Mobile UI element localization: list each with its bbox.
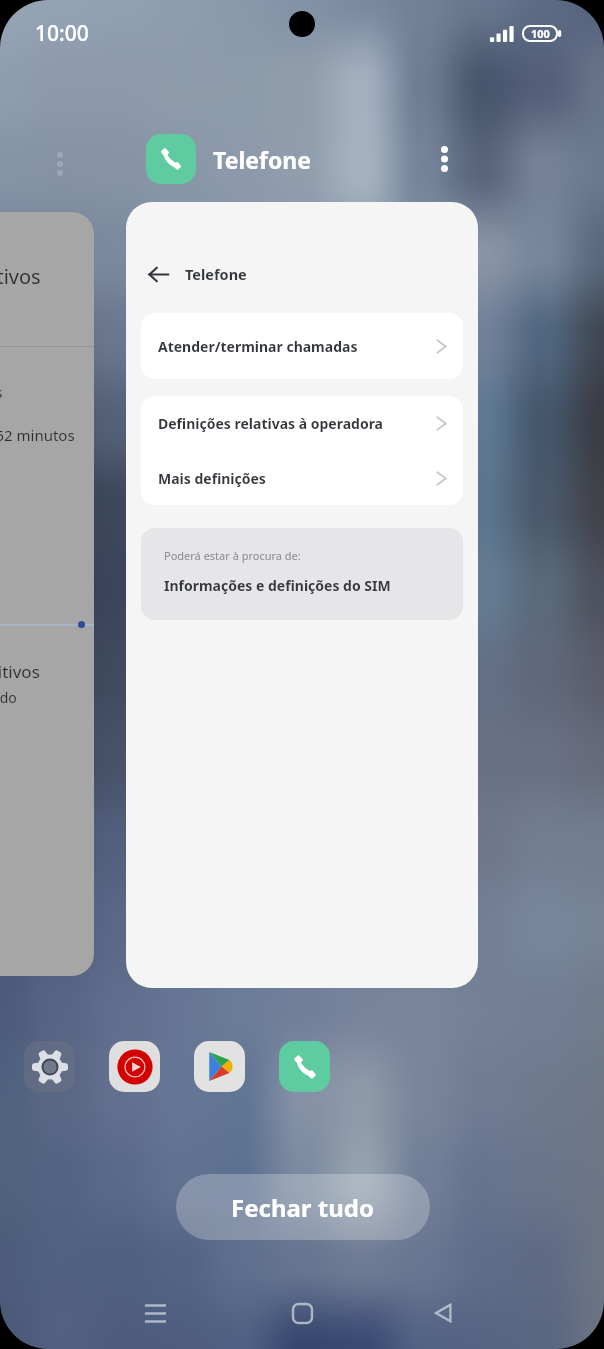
staticText: Informações e definições do SIM xyxy=(164,576,391,595)
button[interactable]: More options xyxy=(48,152,72,176)
button[interactable]: Play Store xyxy=(194,1041,245,1092)
button[interactable]: Back xyxy=(139,255,177,293)
button[interactable]: Atender/terminar chamadas xyxy=(141,313,463,379)
button[interactable]: Settings xyxy=(24,1041,75,1092)
staticText: Poderá estar à procura de: xyxy=(164,548,301,563)
staticText: Dispositivos xyxy=(0,263,41,290)
button[interactable]: Definições relativas à operadora xyxy=(141,396,463,451)
button[interactable]: Mais definições xyxy=(141,451,463,505)
button[interactable]: Poderá estar à procura de: xyxy=(141,528,463,620)
button[interactable]: Dispositivos xyxy=(0,212,94,976)
staticText: Atender/terminar chamadas xyxy=(158,337,358,356)
staticText: Definições relativas à operadora xyxy=(158,414,383,433)
button[interactable]: Back xyxy=(421,1290,467,1336)
staticText: Dispositivos xyxy=(0,660,40,683)
staticText: Telefone xyxy=(185,264,247,284)
button[interactable]: Home xyxy=(279,1290,325,1336)
staticText: Fechar tudo xyxy=(231,1191,375,1224)
button[interactable]: YouTube Music xyxy=(109,1041,160,1092)
staticText: Chamadas xyxy=(0,382,3,402)
button[interactable]: Phone xyxy=(279,1041,330,1092)
button[interactable]: More options xyxy=(424,139,464,179)
staticText: Há 52 minutos xyxy=(0,425,75,445)
button[interactable]: Recents xyxy=(132,1290,178,1336)
staticText: 10:00 xyxy=(35,19,89,48)
staticText: Telefone xyxy=(213,144,311,175)
button[interactable]: Fechar tudo xyxy=(176,1174,430,1240)
button[interactable] xyxy=(0,212,5,976)
staticText: Mais definições xyxy=(158,469,266,488)
staticText: 100 xyxy=(531,26,550,41)
staticText: ligado xyxy=(0,688,17,707)
